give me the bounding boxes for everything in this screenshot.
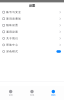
staticText: 帮助中心: [6, 43, 18, 46]
staticText: 隐私设置: [6, 24, 18, 27]
staticText: 我的: [51, 94, 55, 96]
staticText: 通用设置: [6, 30, 18, 33]
staticText: 账号与安全: [6, 11, 21, 14]
staticText: 首页: [9, 94, 13, 96]
staticText: 设置: [29, 4, 35, 8]
staticText: 关于我们: [6, 37, 18, 40]
staticText: 深色模式: [6, 50, 18, 53]
staticText: 新消息通知: [6, 17, 21, 20]
staticText: 发现: [30, 94, 34, 96]
